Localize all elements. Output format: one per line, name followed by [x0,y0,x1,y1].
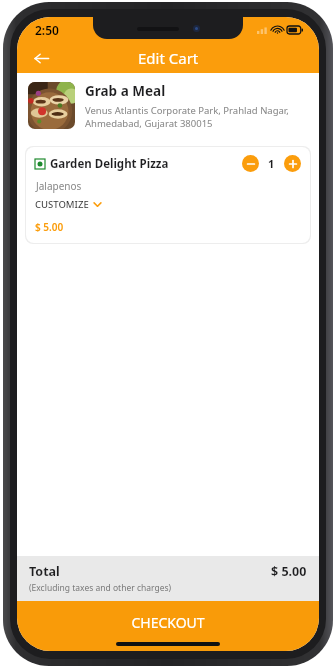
button[interactable]: Back [27,44,55,72]
staticText: CUSTOMIZE [35,198,89,211]
staticText: Jalapenos [36,179,82,193]
button[interactable]: Garden Delight Pizza [26,147,310,243]
staticText: Total [29,563,60,580]
button[interactable]: CUSTOMIZE [35,198,102,211]
staticText: Venus Atlantis Corporate Park, Prahlad N… [85,104,289,130]
staticText: Grab a Meal [85,82,166,100]
staticText: Garden Delight Pizza [50,156,169,172]
button[interactable]: Decrease quantity [242,155,259,172]
button[interactable]: Grab a Meal [17,73,319,139]
staticText: (Excluding taxes and other charges) [29,582,172,594]
staticText: $ 5.00 [271,563,307,580]
button[interactable]: CHECKOUT [17,601,319,651]
staticText: $ 5.00 [35,220,64,234]
staticText: 1 [268,156,275,171]
staticText: Edit Cart [138,48,199,68]
staticText: 2:50 [35,22,59,38]
staticText: CHECKOUT [131,613,205,632]
button[interactable]: Increase quantity [284,155,301,172]
